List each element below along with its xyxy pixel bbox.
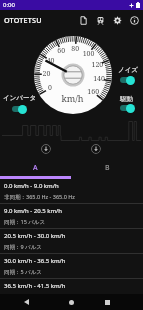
button[interactable]: Inverter	[11, 104, 27, 114]
button[interactable]: Train	[92, 10, 109, 30]
staticText: 30.0 km/h - 36.5 km/h	[4, 257, 66, 265]
button[interactable]: A	[0, 160, 71, 176]
staticText: 36.5 km/h - 41.5 km/h	[4, 282, 66, 290]
staticText: 同期：3 パルス	[4, 293, 42, 301]
staticText: A	[33, 163, 38, 173]
staticText: OTOTETSU	[4, 15, 42, 25]
staticText: 0:00	[3, 1, 15, 9]
button[interactable]: Noise	[119, 75, 135, 85]
button[interactable]: 30.0 km/h - 36.5 km/h	[0, 254, 143, 278]
staticText: 同期：15 パルス	[4, 218, 46, 226]
button[interactable]: Download waveform B	[90, 143, 101, 154]
button[interactable]: Back	[22, 294, 31, 310]
button[interactable]: Drive	[119, 103, 135, 113]
staticText: 非同期：365.0 Hz - 365.0 Hz	[4, 193, 75, 201]
staticText: 駆動	[120, 95, 133, 103]
button[interactable]: 36.5 km/h - 41.5 km/h	[0, 279, 143, 303]
button[interactable]: Home	[66, 294, 76, 310]
staticText: 9.0 km/h - 20.5 km/h	[4, 207, 63, 215]
button[interactable]: 20.5 km/h - 30.0 km/h	[0, 229, 143, 253]
button[interactable]: 0.0 km/h - 9.0 km/h	[0, 179, 143, 203]
button[interactable]: Documents	[75, 10, 92, 30]
button[interactable]: Info	[126, 10, 143, 30]
button[interactable]: B	[71, 160, 143, 176]
staticText: B	[105, 163, 110, 173]
staticText: 0.0 km/h - 9.0 km/h	[4, 182, 59, 190]
staticText: ノイズ	[118, 66, 138, 74]
staticText: 20.5 km/h - 30.0 km/h	[4, 232, 66, 240]
button[interactable]: Download waveform A	[40, 143, 51, 154]
staticText: インバータ	[3, 94, 37, 102]
button[interactable]: Recents	[102, 294, 112, 310]
button[interactable]: 9.0 km/h - 20.5 km/h	[0, 204, 143, 228]
staticText: 同期：5 パルス	[4, 268, 42, 276]
staticText: 同期：9 パルス	[4, 243, 42, 251]
button[interactable]: Settings	[109, 10, 126, 30]
